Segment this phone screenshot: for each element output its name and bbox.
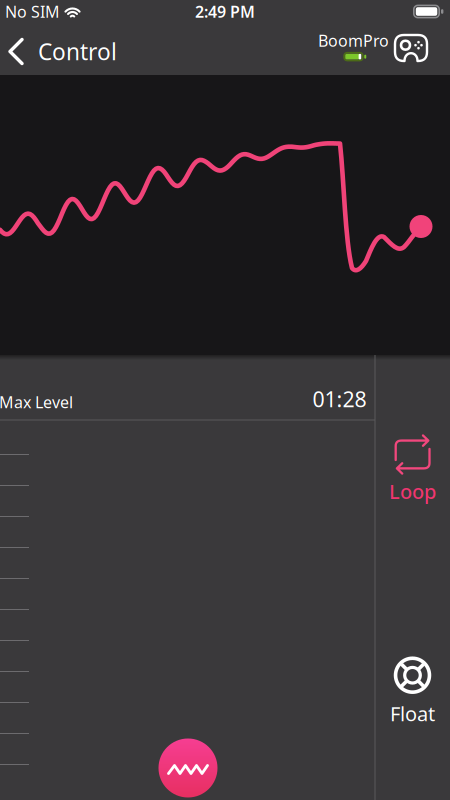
button[interactable]: Loop (375, 435, 449, 505)
staticText: No SIM (5, 1, 60, 22)
staticText: 01:28 (312, 385, 366, 413)
button[interactable]: Float (375, 656, 449, 726)
button[interactable]: BoomPro battery (318, 32, 389, 64)
staticText: Loop (389, 478, 436, 505)
staticText: 2:49 PM (195, 1, 255, 22)
button[interactable]: Back (0, 33, 117, 63)
staticText: Float (390, 700, 435, 727)
staticText: BoomPro (318, 30, 389, 51)
button[interactable]: Vibration pattern (158, 738, 217, 797)
button[interactable]: Game controller (395, 35, 427, 61)
staticText: Control (38, 36, 117, 66)
staticText: Max Level (0, 391, 73, 413)
